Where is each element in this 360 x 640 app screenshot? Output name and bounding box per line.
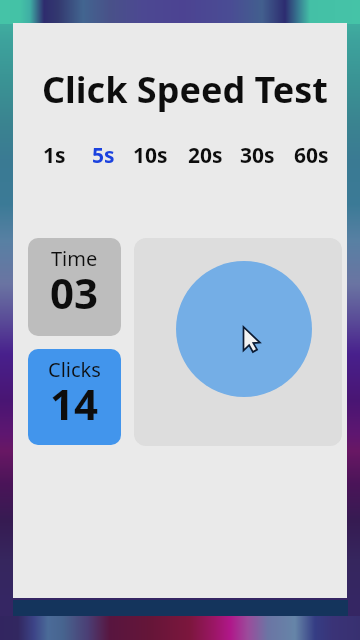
staticText: 20s [188, 141, 223, 167]
staticText: Click Speed Test [42, 65, 328, 114]
staticText: 5s [92, 141, 115, 167]
button[interactable]: 30s [235, 141, 279, 167]
staticText: 03 [50, 264, 99, 321]
button[interactable]: 10s [128, 141, 172, 167]
button[interactable]: 60s [289, 141, 333, 167]
button[interactable]: Click area [134, 238, 342, 446]
button[interactable]: Time [28, 238, 121, 336]
button[interactable]: 5s [81, 141, 125, 167]
staticText: 10s [133, 141, 168, 167]
staticText: 14 [50, 375, 99, 432]
staticText: 1s [43, 141, 66, 167]
staticText: Time [51, 245, 98, 272]
button[interactable]: Clicks [28, 349, 121, 445]
staticText: Clicks [48, 356, 101, 383]
staticText: 30s [240, 141, 275, 167]
staticText: 60s [294, 141, 329, 167]
button[interactable]: 20s [183, 141, 227, 167]
button[interactable]: 1s [32, 141, 76, 167]
